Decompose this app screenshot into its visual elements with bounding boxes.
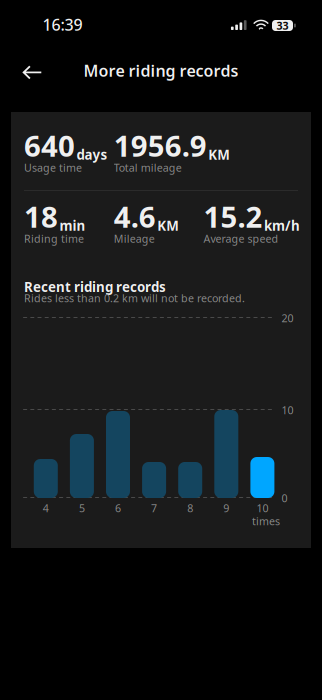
staticText: 18 bbox=[24, 197, 58, 236]
staticText: 10 bbox=[256, 501, 268, 515]
staticText: 6 bbox=[115, 501, 121, 515]
button[interactable]: Back bbox=[0, 0, 322, 700]
staticText: 8 bbox=[187, 501, 193, 515]
staticText: Total mileage bbox=[114, 160, 182, 175]
staticText: 9 bbox=[223, 501, 229, 515]
staticText: 7 bbox=[151, 501, 157, 515]
staticText: Average speed bbox=[204, 231, 279, 246]
staticText: Riding time bbox=[24, 231, 84, 246]
staticText: 33 bbox=[276, 18, 288, 33]
staticText: 10 bbox=[281, 403, 293, 417]
staticText: Rides less than 0.2 km will not be recor… bbox=[24, 291, 245, 305]
staticText: 16:39 bbox=[42, 14, 82, 35]
staticText: times bbox=[252, 514, 280, 528]
staticText: KM bbox=[208, 146, 230, 163]
staticText: 5 bbox=[79, 501, 85, 515]
staticText: min bbox=[59, 217, 85, 234]
staticText: 0 bbox=[281, 491, 287, 505]
staticText: Usage time bbox=[24, 160, 82, 175]
staticText: 640 bbox=[24, 126, 75, 165]
staticText: 4 bbox=[43, 501, 49, 515]
staticText: 15.2 bbox=[204, 197, 263, 236]
staticText: 4.6 bbox=[114, 197, 156, 236]
staticText: km/h bbox=[264, 217, 300, 234]
staticText: Mileage bbox=[114, 231, 155, 246]
staticText: KM bbox=[157, 217, 179, 234]
staticText: 20 bbox=[281, 311, 293, 325]
staticText: days bbox=[76, 146, 107, 163]
staticText: 1956.9 bbox=[114, 126, 207, 165]
staticText: Recent riding records bbox=[24, 278, 166, 296]
staticText: More riding records bbox=[83, 60, 238, 81]
